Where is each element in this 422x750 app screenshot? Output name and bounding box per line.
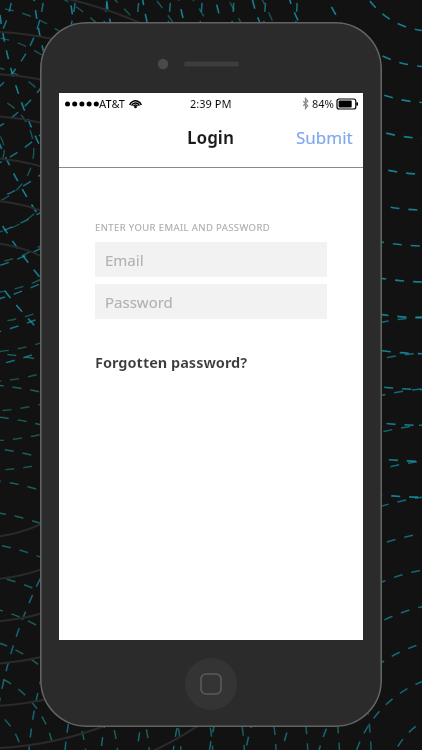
staticText: 2:39 PM <box>190 96 232 111</box>
button[interactable]: Forgotten password? <box>95 352 248 372</box>
button[interactable]: Password <box>95 284 327 319</box>
button[interactable]: Submit <box>286 120 363 155</box>
staticText: Submit <box>296 126 353 149</box>
staticText: Password <box>105 292 173 312</box>
staticText: ENTER YOUR EMAIL AND PASSWORD <box>95 221 271 234</box>
staticText: Login <box>187 126 235 149</box>
staticText: AT&T <box>99 96 126 111</box>
button[interactable]: Email <box>95 242 327 277</box>
staticText: Email <box>105 250 144 270</box>
staticText: Forgotten password? <box>95 352 248 372</box>
staticText: 84% <box>312 96 334 111</box>
button[interactable]: Home <box>185 658 237 710</box>
